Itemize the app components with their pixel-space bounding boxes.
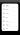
staticText: Dis [6,16,8,18]
button[interactable]: Con [2,11,18,15]
button[interactable]: Dis [2,15,18,19]
staticText: Foc [6,24,9,26]
staticText: Sou [6,20,9,22]
button[interactable]: Sou [2,19,18,23]
staticText: Gen [6,5,9,6]
button[interactable]: Acc [2,8,18,12]
staticText: Con [6,12,9,14]
staticText: Acc [6,9,9,10]
staticText: Pri [6,28,8,30]
button[interactable]: Pri [2,27,18,31]
button[interactable]: Gen [2,4,18,8]
button[interactable]: Foc [2,23,18,27]
